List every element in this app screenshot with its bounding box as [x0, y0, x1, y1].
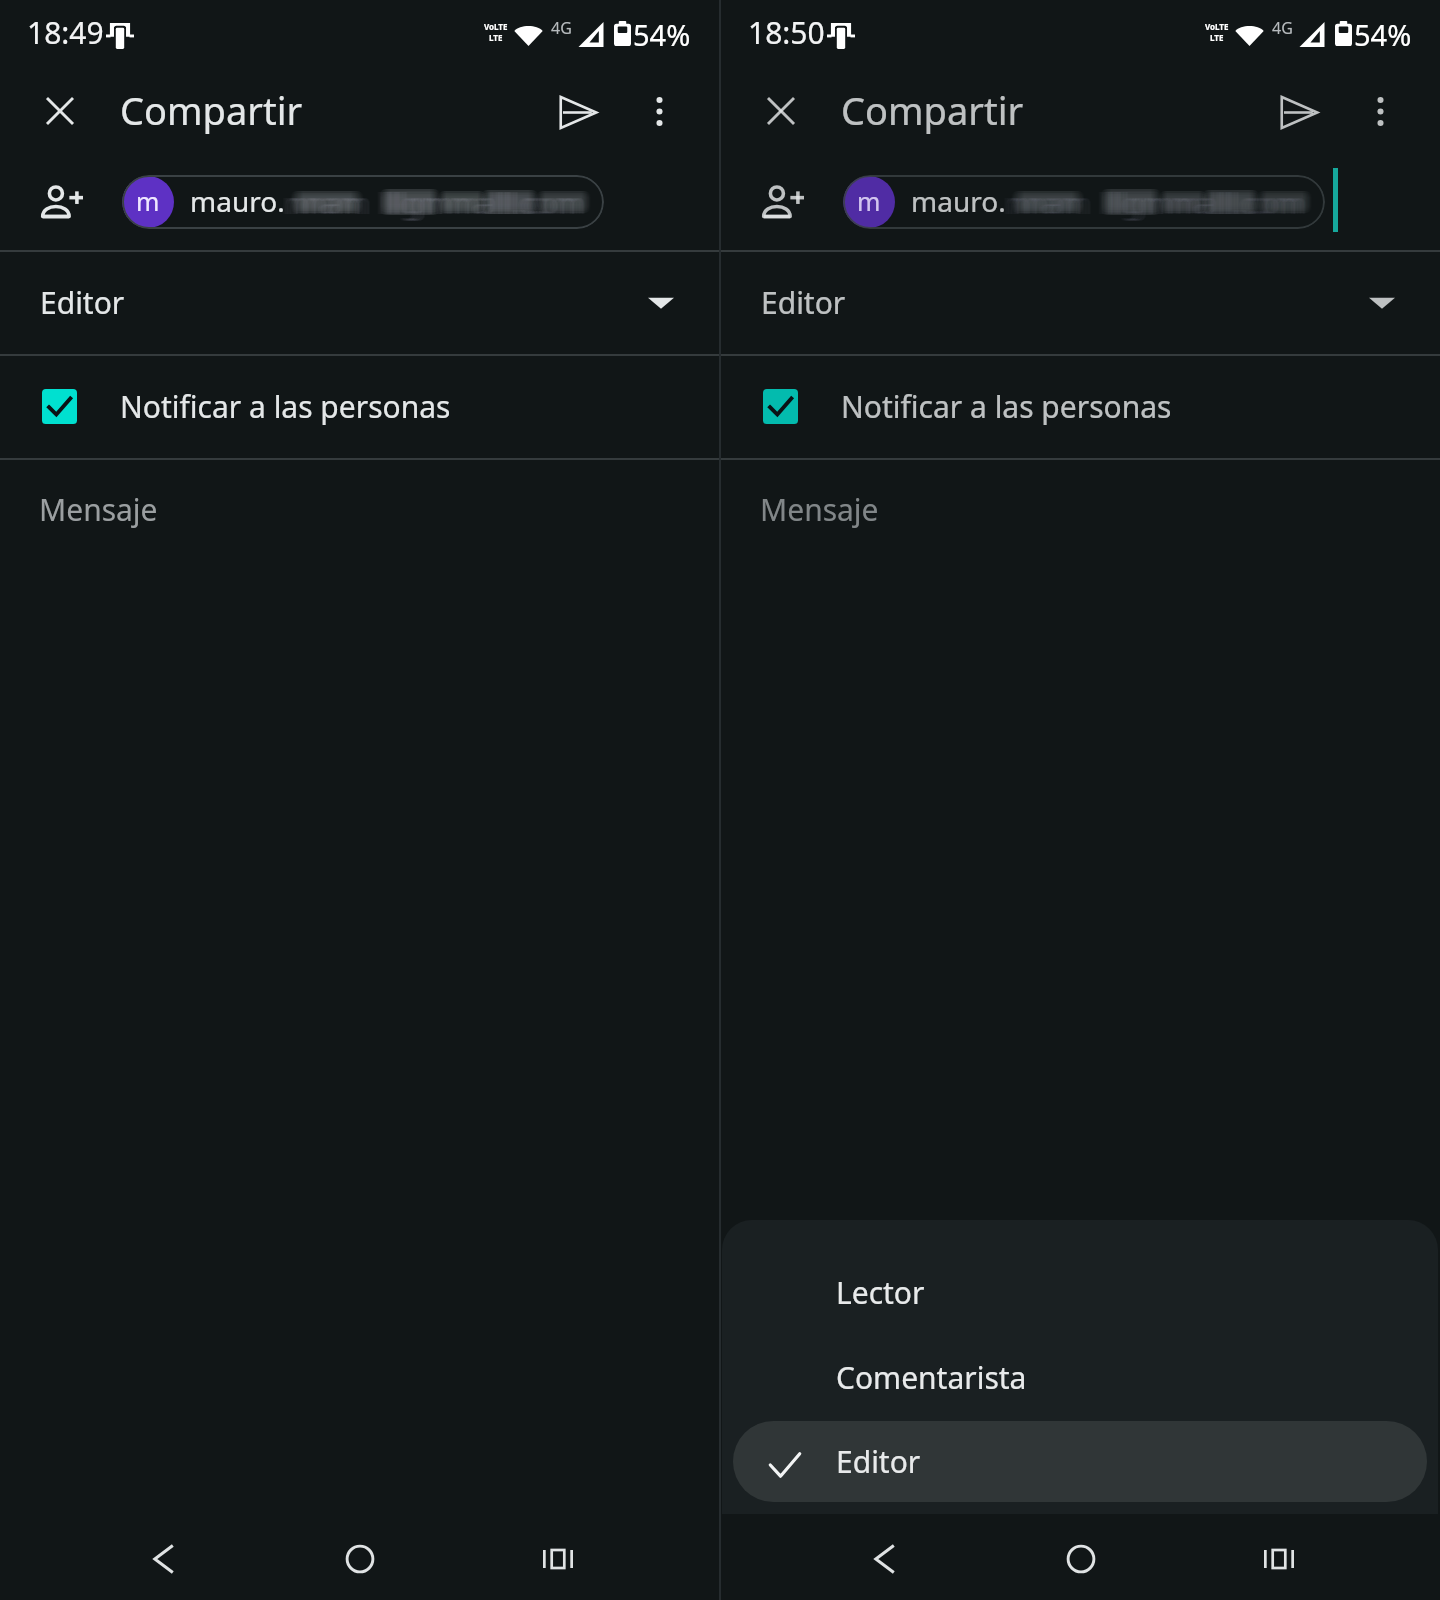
- staticText: Editor: [836, 1441, 921, 1482]
- staticText: nnam lllgmmalll.com: [284, 183, 578, 222]
- staticText: nnam lllgmmalll.com: [1010, 183, 1304, 222]
- button[interactable]: Recientes: [1235, 1514, 1323, 1600]
- staticText: nnam lllgmmalll.com: [1007, 183, 1301, 222]
- button[interactable]: Cerrar: [12, 62, 108, 158]
- staticText: VoLTE: [1205, 21, 1229, 32]
- staticText: Compartir: [841, 84, 1024, 136]
- staticText: Notificar a las personas: [841, 386, 1172, 427]
- button[interactable]: Inicio: [316, 1514, 404, 1600]
- button[interactable]: m: [843, 175, 1325, 229]
- staticText: nnam lllgmmalll.com: [1002, 183, 1296, 222]
- staticText: mauro.: [190, 182, 285, 220]
- staticText: Compartir: [120, 84, 303, 136]
- button[interactable]: Más opciones: [616, 62, 702, 148]
- staticText: nnam lllgmmalll.com: [290, 183, 584, 222]
- button[interactable]: Comentarista: [733, 1337, 1427, 1418]
- button[interactable]: Atrás: [124, 1514, 212, 1600]
- staticText: VoLTE: [484, 21, 508, 32]
- staticText: 18:50: [748, 12, 825, 53]
- staticText: LTE: [489, 32, 503, 43]
- staticText: nnam lllgmmalll.com: [1008, 183, 1302, 222]
- staticText: nnam lllgmmalll.com: [281, 183, 575, 222]
- staticText: 18:49: [27, 12, 104, 53]
- staticText: nnam lllgmmalll.com: [1011, 183, 1305, 222]
- staticText: 54%: [1354, 15, 1412, 54]
- staticText: 4G: [551, 17, 572, 39]
- button[interactable]: Inicio: [1037, 1514, 1125, 1600]
- staticText: Mensaje: [39, 489, 158, 530]
- button[interactable]: Lector: [733, 1252, 1427, 1333]
- staticText: nnam lllgmmalll.com: [289, 183, 583, 222]
- staticText: Editor: [40, 282, 125, 323]
- staticText: 4G: [1272, 17, 1293, 39]
- staticText: m: [136, 184, 160, 218]
- staticText: nnam lllgmmalll.com: [1013, 183, 1307, 222]
- staticText: nnam lllgmmalll.com: [292, 183, 586, 222]
- staticText: 54%: [633, 15, 691, 54]
- staticText: LTE: [1210, 32, 1224, 43]
- button[interactable]: Editor: [0, 251, 719, 354]
- button[interactable]: m: [122, 175, 604, 229]
- staticText: nnam lllgmmalll.com: [1005, 183, 1299, 222]
- staticText: Notificar a las personas: [120, 386, 451, 427]
- staticText: nnam lllgmmalll.com: [287, 183, 581, 222]
- button[interactable]: Notificar a las personas: [0, 355, 719, 458]
- button[interactable]: Más opciones: [1337, 62, 1423, 148]
- button[interactable]: Enviar: [532, 66, 624, 158]
- button[interactable]: Añadir persona: [752, 170, 814, 232]
- staticText: nnam lllgmmalll.com: [283, 183, 577, 222]
- staticText: Comentarista: [836, 1357, 1027, 1398]
- staticText: Mensaje: [760, 489, 879, 530]
- button[interactable]: Añadir persona: [31, 170, 93, 232]
- staticText: mauro.: [911, 182, 1006, 220]
- staticText: m: [857, 184, 881, 218]
- button[interactable]: Atrás: [845, 1514, 933, 1600]
- button[interactable]: Notificar a las personas: [721, 355, 1440, 458]
- button[interactable]: Recientes: [514, 1514, 602, 1600]
- staticText: nnam lllgmmalll.com: [286, 183, 580, 222]
- staticText: nnam lllgmmalll.com: [1004, 183, 1298, 222]
- staticText: Lector: [836, 1272, 925, 1313]
- staticText: Editor: [761, 282, 846, 323]
- button[interactable]: Enviar: [1253, 66, 1345, 158]
- button[interactable]: Editor: [733, 1421, 1427, 1502]
- button[interactable]: Editor: [721, 251, 1440, 354]
- staticText: nnam lllgmmalll.com: [1014, 183, 1308, 222]
- staticText: nnam lllgmmalll.com: [293, 183, 587, 222]
- button[interactable]: Cerrar: [733, 62, 829, 158]
